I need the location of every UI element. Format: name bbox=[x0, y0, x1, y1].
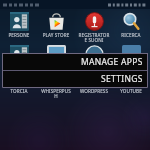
button[interactable]: MANAGE APPS bbox=[2, 54, 148, 70]
button[interactable]: YOUTUBE bbox=[113, 68, 149, 94]
button[interactable]: SETTINGS bbox=[2, 71, 148, 87]
staticText: TORCIA bbox=[1, 88, 37, 94]
staticText: MANAGE APPS bbox=[81, 56, 143, 68]
button[interactable]: WORDPRESS bbox=[76, 68, 112, 94]
staticText: PERSONE bbox=[1, 32, 37, 38]
staticText: REGISTRATOR E SUONI bbox=[76, 32, 112, 44]
staticText: RICERCA bbox=[113, 32, 149, 38]
staticText: WORDPRESS bbox=[76, 88, 112, 94]
button[interactable]: App bbox=[1, 45, 37, 64]
staticText: SETTINGS bbox=[101, 73, 143, 85]
staticText: PLAY STORE bbox=[38, 32, 74, 38]
button[interactable]: WHISPERPUSH bbox=[38, 68, 74, 100]
button[interactable]: PERSONE bbox=[1, 12, 37, 38]
button[interactable]: REGISTRATORE SUONI bbox=[76, 12, 112, 44]
staticText: WHISPERPUS H bbox=[38, 88, 74, 100]
button[interactable]: RICERCA bbox=[113, 12, 149, 38]
button[interactable]: App bbox=[38, 45, 74, 64]
staticText: YOUTUBE bbox=[113, 88, 149, 94]
button[interactable]: TORCIA bbox=[1, 68, 37, 94]
button[interactable]: App bbox=[76, 45, 112, 64]
button[interactable]: PLAY STORE bbox=[38, 12, 74, 38]
button[interactable]: App bbox=[113, 45, 149, 64]
